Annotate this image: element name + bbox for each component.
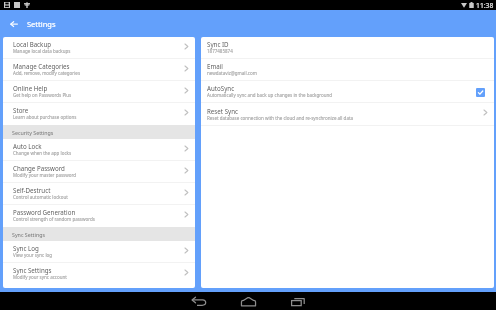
staticText: Self-Destruct [13,186,51,194]
staticText: Auto Lock [13,142,42,150]
staticText: AutoSync [207,84,235,92]
staticText: Learn about purchase options [13,114,77,120]
staticText: Automatically sync and back up changes i… [207,92,333,98]
staticText: Reset Sync [207,107,238,115]
button[interactable]: Auto Lock [3,139,195,161]
staticText: Sync Log [13,244,39,252]
staticText: Store [13,106,29,114]
staticText: newdataviz@gmail.com [207,70,257,76]
staticText: Settings [27,19,56,29]
staticText: Email [207,62,223,70]
staticText: Add, remove, modify categories [13,70,81,76]
button[interactable]: AutoSync [201,81,494,103]
button[interactable]: Self-Destruct [3,183,195,205]
button[interactable]: Email [201,59,494,81]
button[interactable]: Change Password [3,161,195,183]
staticText: Password Generation [13,208,76,216]
button[interactable]: Local Backup [3,37,195,59]
button[interactable]: Manage Categories [3,59,195,81]
staticText: Change Password [13,164,65,172]
staticText: Sync Settings [13,266,52,274]
button[interactable]: Password Generation [3,205,195,227]
staticText: Reset database connection with the cloud… [207,115,354,121]
staticText: 1877485874 [207,48,233,54]
button[interactable]: Sync Settings [3,263,195,285]
button[interactable]: Reset Sync [201,103,494,126]
button[interactable]: Recent apps [273,292,323,310]
staticText: Control automatic lockout [13,194,68,200]
staticText: Security Settings [12,129,54,136]
button[interactable]: Store [3,103,195,125]
staticText: Sync Settings [12,231,45,238]
staticText: View your sync log [13,252,53,258]
staticText: Online Help [13,84,48,92]
button[interactable]: Sync ID [201,37,494,59]
button[interactable]: Online Help [3,81,195,103]
button[interactable]: Home [223,292,273,310]
staticText: Get help on Passwords Plus [13,92,72,98]
button[interactable]: AutoSync toggle [476,88,485,97]
staticText: 11:38 [476,1,494,10]
button[interactable]: Back [173,292,223,310]
staticText: Change when the app locks [13,150,72,156]
staticText: Modify your sync account [13,274,67,280]
staticText: Sync ID [207,40,229,48]
staticText: Manage Categories [13,62,70,70]
staticText: Manage local data backups [13,48,71,54]
staticText: Control strength of random passwords [13,216,95,222]
staticText: Local Backup [13,40,52,48]
button[interactable]: Sync Log [3,241,195,263]
button[interactable]: Navigate up [0,10,27,37]
staticText: Modify your master password [13,172,77,178]
